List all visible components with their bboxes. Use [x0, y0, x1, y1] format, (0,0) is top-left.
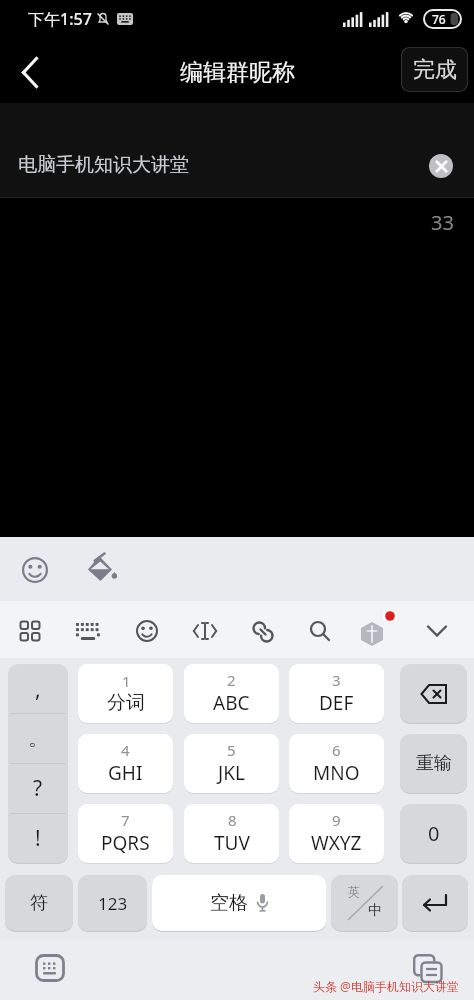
button[interactable]: 5 [184, 734, 279, 793]
button[interactable] [416, 609, 458, 653]
staticText: TUV [214, 830, 250, 856]
staticText: 9 [332, 810, 341, 830]
button[interactable]: 0 [400, 804, 467, 863]
staticText: 1 [122, 671, 131, 691]
staticText: 76 [432, 11, 446, 27]
button[interactable]: 123 [78, 875, 147, 931]
button[interactable]: 1 [78, 664, 173, 723]
staticText: 4 [121, 740, 130, 760]
staticText: ! [35, 824, 41, 853]
button[interactable]: 空格 [152, 875, 326, 931]
button[interactable] [299, 609, 341, 653]
staticText: GHI [108, 760, 143, 786]
button[interactable]: 英 [331, 875, 398, 931]
button[interactable] [9, 609, 51, 653]
button[interactable]: 4 [78, 734, 173, 793]
staticText: 空格 [210, 891, 248, 915]
button[interactable] [242, 609, 284, 653]
staticText: 完成 [413, 56, 457, 84]
staticText: ABC [213, 690, 250, 716]
staticText: 分词 [107, 691, 145, 715]
staticText: 0 [428, 820, 440, 847]
staticText: ? [33, 774, 43, 803]
staticText: 33 [431, 209, 454, 236]
staticText: WXYZ [311, 830, 362, 856]
button[interactable] [67, 609, 109, 653]
staticText: 英 [348, 884, 360, 899]
staticText: 头条 @电脑手机知识大讲堂 [313, 978, 459, 994]
staticText: 。 [28, 725, 49, 751]
button[interactable]: 符 [5, 875, 73, 931]
button[interactable] [184, 609, 226, 653]
button[interactable]: 。 [8, 713, 68, 763]
staticText: 符 [30, 892, 48, 915]
button[interactable]: , [8, 664, 68, 714]
button[interactable] [429, 154, 453, 178]
staticText: JKL [218, 760, 245, 786]
staticText: DEF [319, 690, 354, 716]
staticText: 编辑群昵称 [180, 58, 295, 87]
button[interactable]: ! [8, 813, 68, 863]
staticText: 中 [368, 902, 382, 920]
button[interactable]: 重输 [400, 734, 467, 793]
button[interactable]: 2 [184, 664, 279, 723]
staticText: 电脑手机知识大讲堂 [18, 153, 189, 177]
staticText: 下午1:57 [28, 8, 92, 30]
staticText: 5 [227, 740, 236, 760]
button[interactable] [10, 50, 50, 94]
button[interactable]: 3 [289, 664, 384, 723]
button[interactable]: ? [8, 763, 68, 813]
staticText: 3 [332, 670, 341, 690]
button[interactable]: 完成 [401, 47, 468, 92]
staticText: 2 [227, 670, 236, 690]
button[interactable] [12, 548, 58, 592]
staticText: , [35, 675, 41, 704]
button[interactable]: 8 [184, 804, 279, 863]
staticText: 8 [228, 810, 237, 830]
button[interactable] [84, 552, 118, 586]
button[interactable] [400, 664, 467, 723]
button[interactable] [22, 944, 78, 992]
button[interactable] [402, 875, 468, 931]
button[interactable]: 9 [289, 804, 384, 863]
button[interactable]: 7 [78, 804, 173, 863]
button[interactable] [356, 609, 398, 653]
button[interactable]: 6 [289, 734, 384, 793]
button[interactable] [126, 609, 168, 653]
staticText: PQRS [101, 830, 150, 856]
staticText: 7 [121, 810, 130, 830]
staticText: 重输 [416, 752, 452, 775]
staticText: MNO [313, 760, 360, 786]
staticText: 6 [332, 740, 341, 760]
staticText: 123 [98, 892, 128, 915]
button[interactable] [404, 944, 452, 992]
button[interactable] [0, 103, 474, 197]
